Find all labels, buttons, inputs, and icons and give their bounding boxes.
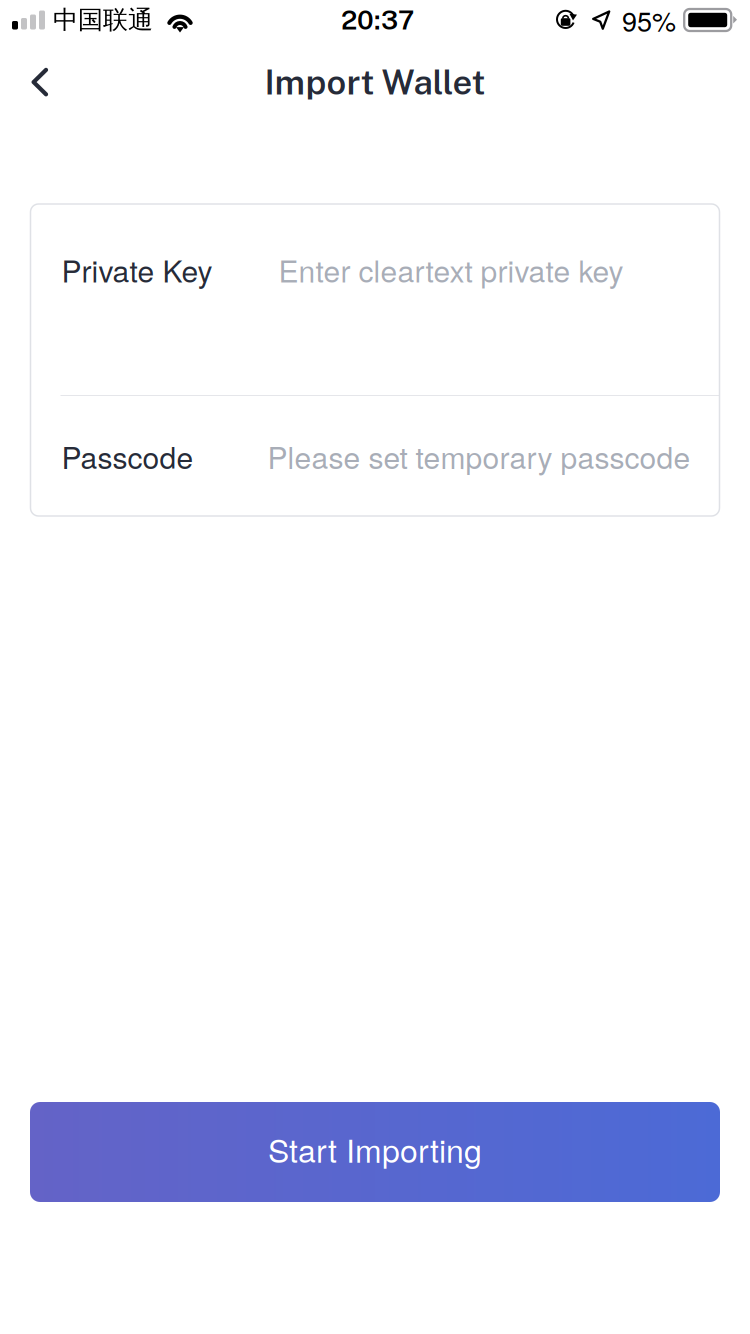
staticText: Start Importing [268, 1126, 482, 1172]
button[interactable]: Private Key [30, 204, 719, 395]
staticText: 中国联通 [53, 4, 153, 36]
staticText: Private Key [61, 248, 212, 291]
staticText: Passcode [61, 434, 193, 477]
button[interactable]: Start Importing [30, 1102, 720, 1202]
staticText: 20:37 [341, 4, 414, 35]
staticText: Enter cleartext private key [278, 248, 623, 291]
staticText: 95% [622, 1, 676, 39]
button[interactable]: Back [0, 50, 80, 112]
button[interactable]: Passcode [30, 396, 719, 516]
staticText: Please set temporary passcode [267, 434, 690, 477]
staticText: Import Wallet [264, 62, 485, 102]
